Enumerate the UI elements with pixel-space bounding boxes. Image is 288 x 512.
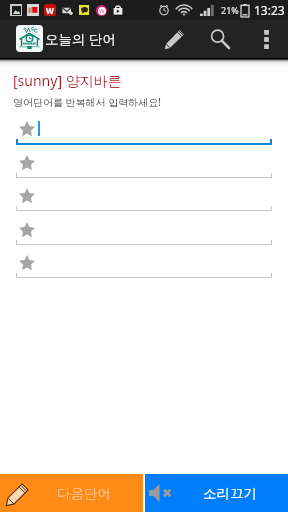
staticText: W (46, 5, 54, 16)
button[interactable]: Search (202, 21, 238, 57)
button[interactable] (0, 184, 288, 217)
button[interactable]: 다음단어 (0, 474, 143, 512)
staticText: 21% (221, 4, 239, 16)
staticText: 13:23 (254, 2, 285, 18)
staticText: 소리끄기 (203, 485, 257, 502)
staticText: W (99, 7, 105, 15)
button[interactable]: More options (250, 23, 282, 55)
staticText: [sunny] 양지바른 (13, 71, 122, 90)
staticText: 다음단어 (57, 485, 111, 502)
button[interactable] (0, 218, 288, 251)
button[interactable]: Write (156, 21, 192, 57)
staticText: 영어단어를 반복해서 입력하세요! (13, 95, 161, 109)
button[interactable] (0, 117, 288, 150)
staticText: 오늘의 단어 (45, 30, 117, 48)
button[interactable] (0, 251, 288, 284)
button[interactable] (0, 151, 288, 184)
button[interactable]: 소리끄기 (145, 474, 288, 512)
